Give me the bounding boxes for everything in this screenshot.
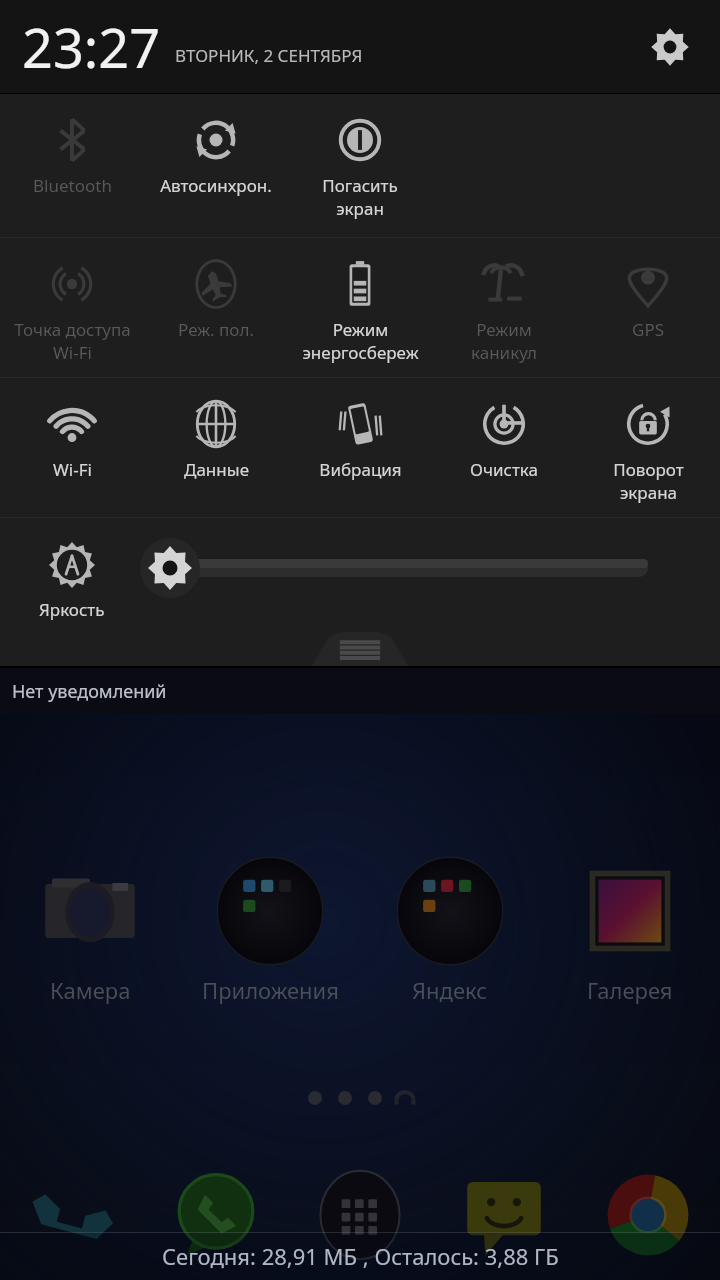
button[interactable]: Режим каникул — [432, 238, 576, 377]
button[interactable]: Реж. пол. — [144, 238, 288, 377]
staticText: 23:27 — [22, 10, 161, 84]
button[interactable]: Settings — [642, 19, 698, 75]
staticText: Яркость — [39, 598, 105, 621]
staticText: Wi-Fi — [53, 458, 92, 481]
staticText: Bluetooth — [33, 174, 112, 197]
button[interactable]: Автосинхрон. — [144, 94, 288, 237]
button[interactable]: Погасить экран — [288, 94, 432, 237]
button[interactable]: Поворот экрана — [576, 378, 720, 517]
staticText: Точка доступа Wi-Fi — [14, 318, 131, 364]
staticText: Поворот экрана — [613, 458, 684, 504]
staticText: Камера — [50, 975, 131, 1005]
button[interactable]: Wi-Fi — [0, 378, 144, 517]
staticText: Нет уведомлений — [12, 679, 167, 704]
button[interactable]: Apps — [288, 1155, 432, 1275]
button[interactable]: Точка доступа Wi-Fi — [0, 238, 144, 377]
button[interactable]: Phone — [0, 1155, 144, 1275]
button[interactable]: Режим энергосбереж — [288, 238, 432, 377]
button[interactable]: Bluetooth — [0, 94, 144, 237]
button[interactable]: Вибрация — [288, 378, 432, 517]
staticText: Яндекс — [412, 975, 488, 1005]
staticText: Галерея — [587, 975, 673, 1005]
staticText: Режим энергосбереж — [302, 318, 419, 364]
staticText: Вибрация — [319, 458, 402, 481]
staticText: GPS — [632, 318, 664, 341]
button[interactable]: Данные — [144, 378, 288, 517]
button[interactable]: Messages — [432, 1155, 576, 1275]
button[interactable]: Яндекс — [360, 855, 540, 1005]
button[interactable]: WhatsApp — [144, 1155, 288, 1275]
staticText: Данные — [184, 458, 249, 481]
button[interactable]: Камера — [0, 855, 180, 1005]
button[interactable]: Нет уведомлений — [0, 668, 720, 714]
staticText: ВТОРНИК, 2 СЕНТЯБРЯ — [175, 44, 363, 67]
staticText: Сегодня: 28,91 МБ , Осталось: 3,88 ГБ — [162, 1241, 559, 1271]
staticText: Реж. пол. — [178, 318, 254, 341]
staticText: Автосинхрон. — [160, 174, 272, 197]
button[interactable]: Collapse — [312, 632, 408, 666]
button[interactable]: Приложения — [180, 855, 360, 1005]
button[interactable]: Очистка — [432, 378, 576, 517]
button[interactable]: Галерея — [540, 855, 720, 1005]
button[interactable] — [144, 544, 648, 592]
staticText: Приложения — [202, 975, 339, 1005]
button[interactable]: Яркость — [0, 518, 144, 658]
staticText: Режим каникул — [471, 318, 537, 364]
staticText: Погасить экран — [322, 174, 398, 220]
button[interactable]: GPS — [576, 238, 720, 377]
button[interactable]: Chrome — [576, 1155, 720, 1275]
staticText: Очистка — [470, 458, 538, 481]
